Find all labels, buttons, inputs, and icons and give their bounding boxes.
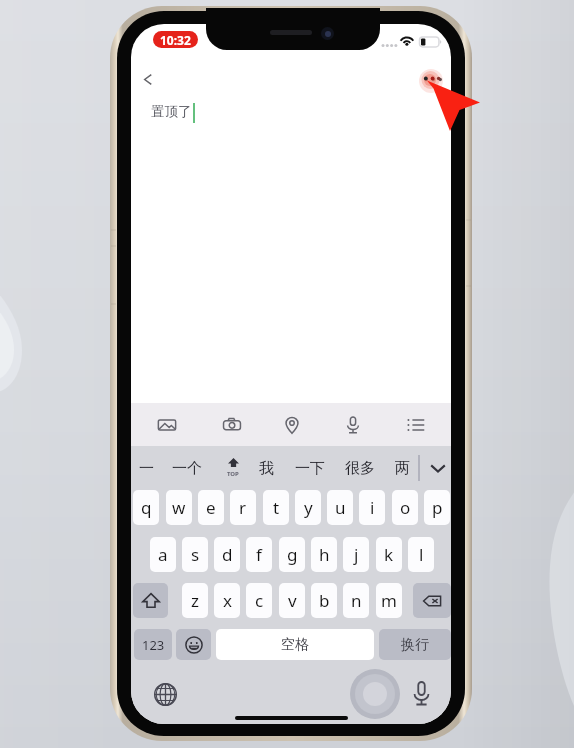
staticText: 两 bbox=[395, 459, 410, 478]
button[interactable]: c bbox=[246, 583, 272, 618]
button[interactable]: More options bbox=[417, 66, 449, 92]
button[interactable]: j bbox=[343, 537, 369, 572]
staticText: u bbox=[335, 496, 346, 519]
button[interactable]: Switch keyboard language bbox=[149, 678, 181, 710]
staticText: a bbox=[158, 543, 168, 566]
button[interactable]: d bbox=[214, 537, 240, 572]
button[interactable]: Back bbox=[133, 66, 163, 92]
button[interactable]: Scroll to top bbox=[217, 446, 249, 490]
button[interactable]: Voice input bbox=[332, 403, 374, 446]
staticText: d bbox=[222, 543, 233, 566]
staticText: 很多 bbox=[345, 459, 375, 478]
staticText: x bbox=[223, 589, 232, 612]
staticText: 我 bbox=[259, 459, 274, 478]
button[interactable]: y bbox=[295, 490, 321, 525]
button[interactable]: n bbox=[343, 583, 369, 618]
button[interactable]: f bbox=[246, 537, 272, 572]
staticText: 一 bbox=[139, 459, 154, 478]
staticText: 换行 bbox=[401, 636, 429, 654]
button[interactable]: 123 bbox=[134, 629, 172, 660]
staticText: p bbox=[432, 496, 443, 519]
button[interactable]: m bbox=[376, 583, 402, 618]
staticText: 123 bbox=[142, 636, 165, 654]
button[interactable]: Backspace bbox=[413, 583, 451, 618]
staticText: 一个 bbox=[172, 459, 202, 478]
button[interactable]: k bbox=[376, 537, 402, 572]
staticText: k bbox=[384, 543, 394, 566]
staticText: j bbox=[354, 543, 359, 566]
button[interactable]: r bbox=[230, 490, 256, 525]
staticText: 一下 bbox=[295, 459, 325, 478]
button[interactable]: 一下 bbox=[287, 446, 333, 490]
staticText: 置顶了 bbox=[151, 103, 192, 120]
staticText: n bbox=[351, 589, 362, 612]
button[interactable]: e bbox=[198, 490, 224, 525]
staticText: 空格 bbox=[281, 636, 309, 654]
button[interactable]: u bbox=[327, 490, 353, 525]
staticText: m bbox=[381, 589, 397, 612]
button[interactable]: l bbox=[408, 537, 434, 572]
button[interactable]: b bbox=[311, 583, 337, 618]
button[interactable]: 空格 bbox=[216, 629, 374, 660]
button[interactable]: a bbox=[150, 537, 176, 572]
button[interactable]: s bbox=[182, 537, 208, 572]
button[interactable]: Insert image bbox=[146, 403, 188, 446]
button[interactable]: Checklist bbox=[395, 403, 437, 446]
button[interactable]: z bbox=[182, 583, 208, 618]
button[interactable]: 很多 bbox=[337, 446, 383, 490]
button[interactable]: q bbox=[133, 490, 159, 525]
button[interactable]: 两 bbox=[388, 446, 417, 490]
button[interactable]: v bbox=[279, 583, 305, 618]
staticText: w bbox=[172, 496, 186, 519]
staticText: v bbox=[288, 589, 297, 612]
staticText: q bbox=[141, 496, 152, 519]
staticText: h bbox=[319, 543, 330, 566]
button[interactable]: Location bbox=[271, 403, 313, 446]
button[interactable]: 我 bbox=[252, 446, 281, 490]
button[interactable]: Voice dictation bbox=[405, 677, 437, 709]
staticText: b bbox=[319, 589, 330, 612]
staticText: o bbox=[400, 496, 411, 519]
button[interactable]: 换行 bbox=[379, 629, 451, 660]
button[interactable]: 一个 bbox=[164, 446, 210, 490]
button[interactable]: w bbox=[166, 490, 192, 525]
button[interactable]: t bbox=[263, 490, 289, 525]
staticText: 10:32 bbox=[160, 32, 191, 48]
button[interactable]: x bbox=[214, 583, 240, 618]
button[interactable]: h bbox=[311, 537, 337, 572]
button[interactable]: i bbox=[359, 490, 385, 525]
staticText: y bbox=[304, 496, 313, 519]
staticText: l bbox=[419, 543, 424, 566]
button[interactable]: o bbox=[392, 490, 418, 525]
staticText: f bbox=[256, 543, 262, 566]
staticText: e bbox=[206, 496, 216, 519]
staticText: TOP bbox=[227, 470, 239, 478]
button[interactable]: 一 bbox=[132, 446, 161, 490]
staticText: s bbox=[191, 543, 200, 566]
staticText: r bbox=[239, 496, 247, 519]
staticText: t bbox=[273, 496, 280, 519]
button[interactable]: Emoji bbox=[176, 629, 211, 660]
button[interactable]: Camera bbox=[211, 403, 253, 446]
staticText: z bbox=[191, 589, 199, 612]
button[interactable]: Shift bbox=[133, 583, 168, 618]
staticText: g bbox=[287, 543, 298, 566]
staticText: c bbox=[255, 589, 264, 612]
button[interactable]: Collapse candidates bbox=[422, 446, 451, 490]
button[interactable]: p bbox=[424, 490, 450, 525]
button[interactable]: g bbox=[279, 537, 305, 572]
staticText: i bbox=[370, 496, 375, 519]
